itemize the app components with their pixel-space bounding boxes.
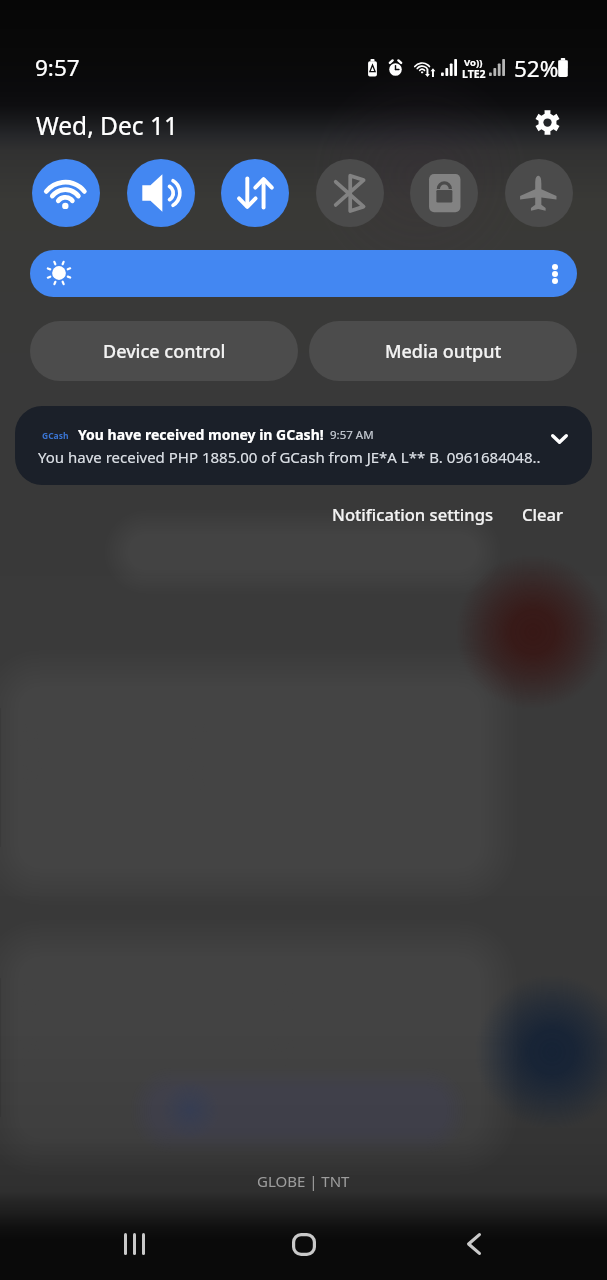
staticText: GLOBE | TNT bbox=[257, 1171, 350, 1191]
button[interactable]: Secure Wi-Fi bbox=[410, 159, 478, 227]
staticText: You have received PHP 1885.00 of GCash f… bbox=[38, 447, 541, 467]
button[interactable]: Back bbox=[436, 1206, 512, 1280]
button[interactable]: Sound bbox=[127, 159, 195, 227]
staticText: Notification settings bbox=[332, 503, 494, 526]
staticText: Clear bbox=[522, 503, 564, 526]
button[interactable]: Flight mode bbox=[505, 159, 573, 227]
button[interactable]: Home bbox=[266, 1206, 342, 1280]
button[interactable]: Recents bbox=[96, 1206, 172, 1280]
staticText: You have received money in GCash! bbox=[78, 425, 324, 444]
button[interactable]: Media output bbox=[309, 321, 577, 381]
button[interactable]: Notification settings bbox=[320, 497, 506, 532]
button[interactable]: Wi-Fi bbox=[32, 159, 100, 227]
button[interactable]: Device control bbox=[30, 321, 298, 381]
button[interactable]: Bluetooth bbox=[316, 159, 384, 227]
button[interactable]: Clear bbox=[510, 497, 576, 532]
staticText: Vo)) bbox=[464, 56, 483, 69]
button[interactable]: Brightness bbox=[30, 250, 577, 297]
staticText: 9:57 bbox=[35, 52, 80, 83]
button[interactable]: Settings bbox=[523, 98, 571, 146]
staticText: 52% bbox=[514, 53, 559, 84]
staticText: Media output bbox=[385, 339, 502, 364]
staticText: LTE2 bbox=[462, 67, 486, 81]
other: Expand notification bbox=[551, 434, 568, 444]
staticText: Wed, Dec 11 bbox=[36, 109, 178, 142]
button[interactable]: Mobile data bbox=[221, 159, 289, 227]
staticText: GCash bbox=[42, 430, 69, 442]
button[interactable]: GCash bbox=[15, 406, 592, 485]
staticText: 9:57 AM bbox=[330, 427, 374, 443]
staticText: Device control bbox=[103, 339, 226, 364]
